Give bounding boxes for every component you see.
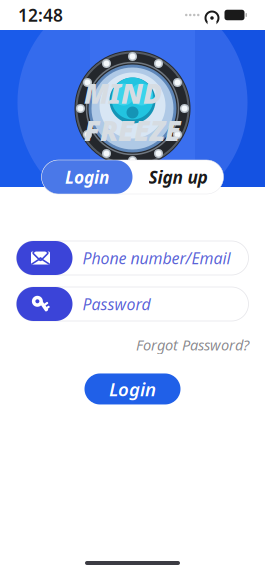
button[interactable]: Password [16, 287, 248, 321]
staticText: Sign up [148, 165, 207, 188]
staticText: Login [65, 165, 109, 188]
button[interactable]: Forgot Password? [136, 332, 249, 357]
staticText: Password [82, 293, 150, 315]
button[interactable]: Login [84, 373, 180, 404]
button[interactable]: Login [41, 160, 132, 194]
staticText: 12:48 [18, 3, 63, 26]
button[interactable]: Sign up [132, 160, 223, 194]
button[interactable]: Phone number/Email [16, 241, 248, 275]
staticText: Forgot Password? [136, 335, 249, 354]
staticText: Login [109, 377, 156, 401]
staticText: Phone number/Email [82, 247, 230, 269]
staticText: MIND FREEZE [84, 74, 181, 149]
